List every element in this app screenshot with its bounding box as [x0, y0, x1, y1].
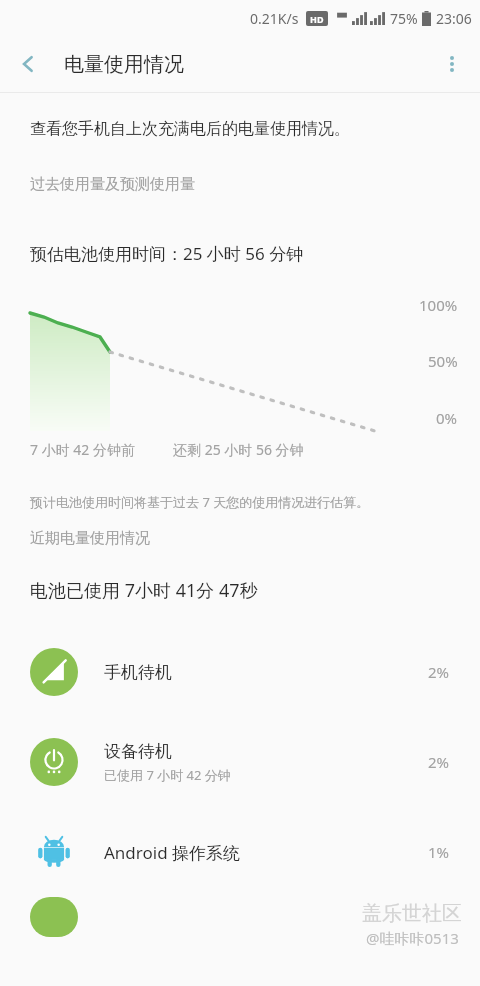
- staticText: 2%: [428, 662, 450, 682]
- staticText: 查看您手机自上次充满电后的电量使用情况。: [30, 119, 350, 139]
- staticText: 75%: [390, 9, 418, 28]
- staticText: 盖乐世社区: [362, 901, 462, 926]
- staticText: 设备待机: [104, 741, 172, 762]
- staticText: 100%: [419, 295, 458, 315]
- button[interactable]: Back: [0, 36, 56, 92]
- staticText: 0%: [436, 408, 458, 428]
- staticText: 50%: [428, 351, 458, 371]
- staticText: 电池已使用 7小时 41分 47秒: [30, 578, 258, 603]
- staticText: 还剩 25 小时 56 分钟: [173, 440, 304, 459]
- staticText: 23:06: [436, 9, 472, 28]
- staticText: 2%: [428, 752, 450, 772]
- staticText: 0.21K/s: [250, 9, 299, 28]
- staticText: 近期电量使用情况: [30, 529, 150, 548]
- staticText: Android 操作系统: [104, 841, 241, 864]
- staticText: 7 小时 42 分钟前: [30, 440, 135, 459]
- staticText: 过去使用量及预测使用量: [30, 175, 195, 194]
- staticText: 电量使用情况: [64, 52, 184, 77]
- staticText: 预估电池使用时间：25 小时 56 分钟: [30, 242, 304, 265]
- button[interactable]: 设备待机: [0, 717, 480, 807]
- staticText: 手机待机: [104, 662, 172, 683]
- button[interactable]: More options: [424, 36, 480, 92]
- button[interactable]: Android 操作系统: [0, 807, 480, 897]
- staticText: 已使用 7 小时 42 分钟: [104, 766, 231, 784]
- button[interactable]: 手机待机: [0, 627, 480, 717]
- staticText: 1%: [428, 842, 450, 862]
- staticText: 预计电池使用时间将基于过去 7 天您的使用情况进行估算。: [30, 493, 370, 511]
- staticText: @哇咔咔0513: [366, 928, 459, 948]
- staticText: HD: [310, 13, 324, 25]
